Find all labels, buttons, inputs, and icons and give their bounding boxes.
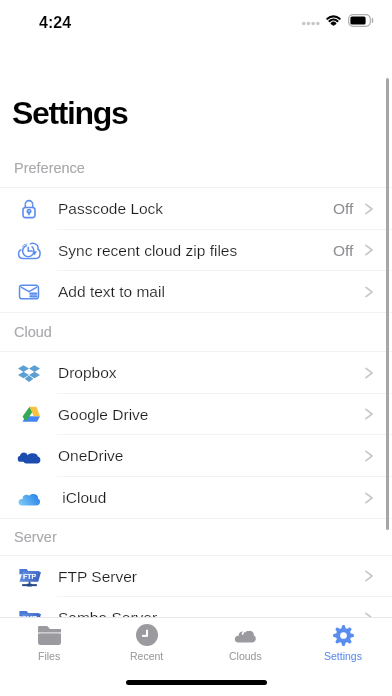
staticText: Add text to mail xyxy=(58,283,165,300)
staticText: Dropbox xyxy=(58,364,117,381)
button[interactable]: Sync recent cloud zip files xyxy=(0,230,392,270)
button[interactable]: Passcode Lock xyxy=(0,188,392,229)
staticText: Server xyxy=(14,529,57,545)
staticText: Settings xyxy=(324,650,362,662)
staticText: Passcode Lock xyxy=(58,200,164,217)
staticText: FTP Server xyxy=(58,568,137,585)
button[interactable]: Files xyxy=(0,618,98,657)
button[interactable]: OneDrive xyxy=(0,435,392,476)
staticText: Google Drive xyxy=(58,406,149,423)
staticText: iCloud xyxy=(58,489,107,506)
button[interactable]: iCloud xyxy=(0,477,392,518)
staticText: Settings xyxy=(12,95,128,131)
button[interactable]: Clouds xyxy=(196,618,294,657)
button[interactable]: FTP xyxy=(0,556,392,596)
staticText: Preference xyxy=(14,160,85,176)
button[interactable]: Recent xyxy=(98,618,196,657)
button[interactable]: SMB xyxy=(0,597,392,617)
staticText: Clouds xyxy=(229,650,262,662)
staticText: Recent xyxy=(130,650,164,662)
staticText: Files xyxy=(38,650,61,662)
button[interactable]: Google Drive xyxy=(0,394,392,434)
staticText: SMB xyxy=(22,615,38,617)
button[interactable]: Settings xyxy=(294,618,392,657)
staticText: Samba Server xyxy=(58,609,158,617)
staticText: Off xyxy=(333,200,354,217)
staticText: Off xyxy=(333,242,354,259)
staticText: 4:24 xyxy=(39,14,72,32)
staticText: OneDrive xyxy=(58,447,124,464)
staticText: Cloud xyxy=(14,324,52,340)
staticText: Sync recent cloud zip files xyxy=(58,242,238,259)
button[interactable]: Add text to mail xyxy=(0,271,392,312)
staticText: FTP xyxy=(23,573,37,581)
button[interactable]: Dropbox xyxy=(0,352,392,393)
